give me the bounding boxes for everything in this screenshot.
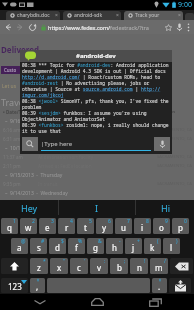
- button[interactable]: 1: [1, 218, 18, 234]
- button[interactable]: |Type here: [41, 137, 151, 151]
- button[interactable]: New tab: [185, 13, 194, 20]
- button[interactable]: Home: [79, 294, 115, 310]
- button[interactable]: Track your: [124, 11, 183, 20]
- button[interactable]: *: [30, 258, 48, 274]
- button[interactable]: @: [11, 238, 28, 254]
- button[interactable]: 6: [96, 218, 113, 234]
- staticText: 08:39 <sesjdm> funkbos: I assume you're …: [22, 110, 147, 116]
- button[interactable]: 3: [39, 218, 56, 234]
- staticText: 08:38 <jwoo1> SimonVT, pfs, thank you, I…: [22, 98, 169, 104]
- button[interactable]: Hey: [0, 200, 58, 215]
- staticText: s: [37, 242, 41, 253]
- staticText: I: [95, 202, 99, 214]
- button[interactable]: /: [150, 258, 168, 274]
- staticText: 08:38 *** Topic for #android-dev: Androi…: [22, 62, 169, 68]
- button[interactable]: Send: [169, 278, 191, 293]
- button[interactable]: :: [90, 258, 108, 274]
- button[interactable]: ,: [30, 278, 45, 293]
- staticText: t: [84, 222, 87, 233]
- button[interactable]: ;: [110, 258, 128, 274]
- button[interactable]: 0: [172, 218, 189, 234]
- button[interactable]: Back: [22, 294, 58, 310]
- staticText: 6: [108, 218, 111, 225]
- staticText: charybdis.doc: [17, 12, 55, 19]
- staticText: Activity: [38, 109, 56, 115]
- staticText: v: [97, 262, 102, 273]
- button[interactable]: Voice search: [174, 20, 184, 34]
- button[interactable]: $: [49, 238, 66, 254]
- staticText: 1: [13, 218, 16, 225]
- button[interactable]: 5: [77, 218, 94, 234]
- staticText: 08:39 <funkbos> rosidm1: nope, i really …: [22, 122, 169, 128]
- button[interactable]: &: [87, 238, 104, 254]
- button[interactable]: Hi: [136, 200, 194, 215]
- button[interactable]: 7: [115, 218, 132, 234]
- button[interactable]: charybdis.doc: [6, 11, 60, 20]
- button[interactable]: 2: [20, 218, 37, 234]
- button[interactable]: #: [30, 238, 47, 254]
- button[interactable]: !: [130, 258, 148, 274]
- button[interactable]: ": [50, 258, 68, 274]
- staticText: 9:35 pm: [3, 181, 21, 187]
- button[interactable]: Shift: [1, 258, 28, 274]
- button[interactable]: Search: [22, 137, 38, 151]
- button[interactable]: ): [163, 238, 180, 254]
- button[interactable]: +: [125, 238, 142, 254]
- staticText: i: [141, 222, 144, 233]
- staticText: ": [63, 258, 66, 265]
- staticText: – 9/14/2013 - Wednesday: [1, 190, 68, 197]
- staticText: development | Android 4.3 SDK is out | O…: [22, 68, 172, 74]
- staticText: Track your: [135, 12, 178, 19]
- staticText: 3:28 am: [3, 199, 21, 205]
- staticText: Departed FedEx location: [38, 199, 91, 205]
- staticText: 9: [165, 218, 168, 225]
- staticText: .: [158, 281, 161, 292]
- button[interactable]: 8: [134, 218, 151, 234]
- button[interactable]: Recents: [137, 294, 173, 310]
- button[interactable]: Reload: [26, 20, 38, 34]
- button[interactable]: Symbols: [1, 278, 28, 293]
- staticText: 9:00: [178, 0, 192, 10]
- staticText: it to use that: [22, 128, 61, 134]
- staticText: w: [25, 222, 32, 233]
- button[interactable]: 4: [58, 218, 75, 234]
- staticText: ,: [36, 281, 39, 292]
- staticText: • Date/Time: [3, 109, 30, 115]
- button[interactable]: .: [152, 278, 167, 293]
- staticText: 2:11 pm: [3, 163, 21, 169]
- staticText: Custo: [4, 67, 17, 73]
- button[interactable]: Back: [2, 20, 14, 34]
- staticText: b: [117, 262, 122, 273]
- staticText: Let us: [2, 83, 17, 90]
- staticText: f: [75, 242, 78, 253]
- staticText: ×: [116, 12, 119, 19]
- button[interactable]: android-sdk: [63, 11, 121, 20]
- staticText: p: [178, 222, 183, 233]
- staticText: m: [155, 262, 163, 273]
- staticText: ): [176, 238, 178, 245]
- staticText: Hey: [21, 202, 38, 214]
- button[interactable]: ': [70, 258, 88, 274]
- button[interactable]: 9: [153, 218, 170, 234]
- staticText: q: [7, 222, 12, 233]
- button[interactable]: (: [144, 238, 161, 254]
- button[interactable]: Forward: [14, 20, 26, 34]
- staticText: |Type here: [41, 140, 73, 148]
- button[interactable]: Menu: [184, 20, 192, 34]
- button[interactable]: Custo: [1, 66, 20, 74]
- staticText: r: [65, 222, 69, 233]
- staticText: https://www.fedex.com/fedextrack/?tra: [48, 24, 149, 31]
- button[interactable]: Backspace: [170, 258, 193, 274]
- button[interactable]: I: [59, 200, 135, 215]
- button[interactable]: %: [68, 238, 85, 254]
- staticText: 6:16 am: [3, 127, 21, 133]
- staticText: h: [112, 242, 117, 253]
- button[interactable]: -: [106, 238, 123, 254]
- staticText: SACRAMENTO, CA: [157, 127, 193, 133]
- button[interactable]: Voice input: [154, 137, 170, 151]
